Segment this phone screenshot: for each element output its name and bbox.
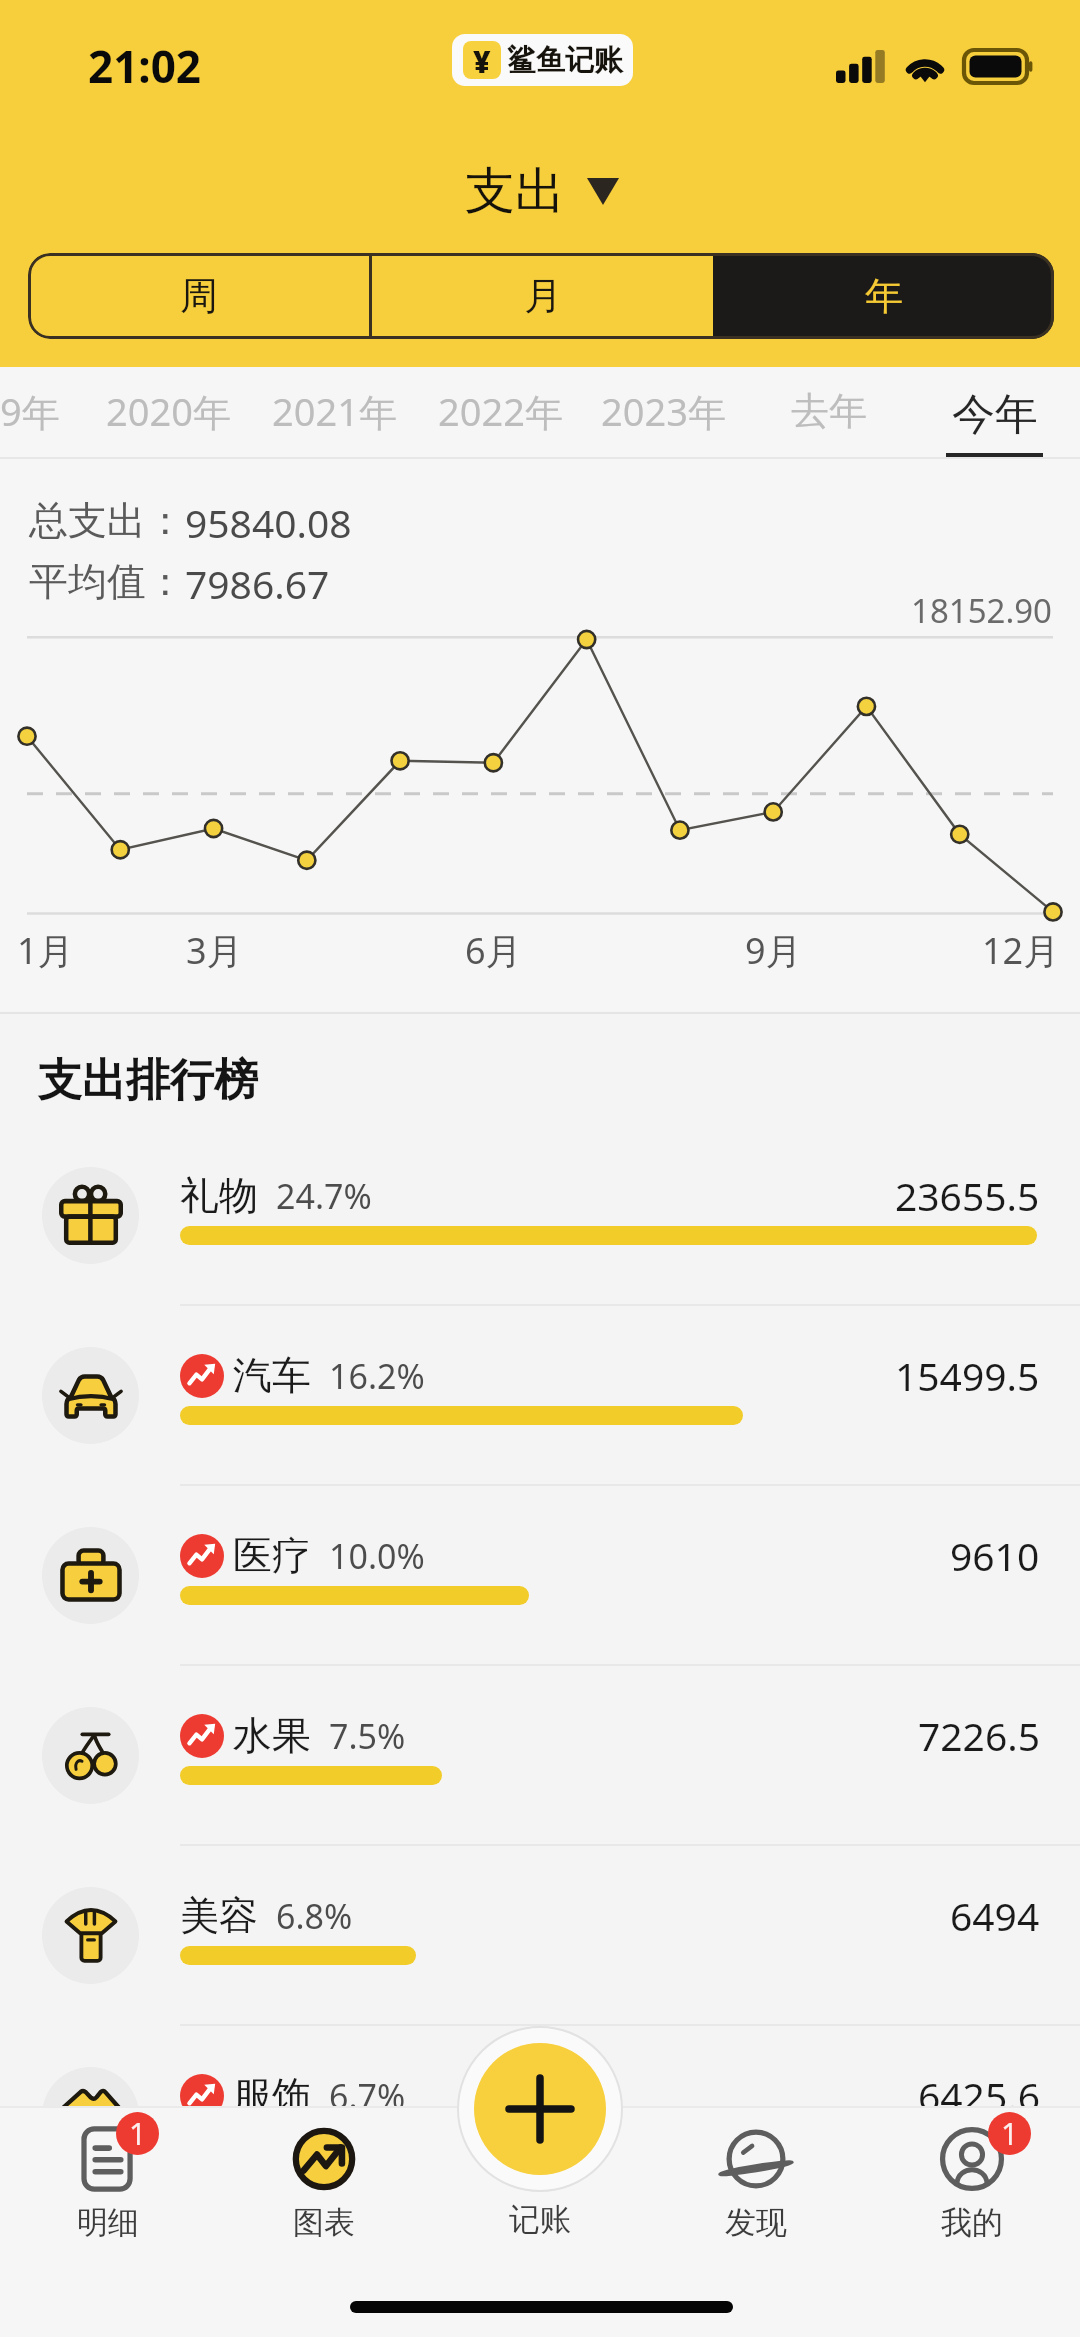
- staticText: 23655.5: [895, 1169, 1040, 1222]
- staticText: 周: [180, 272, 218, 320]
- staticText: 医疗: [233, 1531, 311, 1580]
- staticText: ¥: [473, 41, 491, 79]
- staticText: 2022年: [438, 385, 563, 437]
- staticText: 21:02: [88, 36, 202, 96]
- staticText: 我的: [941, 2203, 1003, 2242]
- staticText: 2020年: [106, 385, 231, 437]
- staticText: 6.8%: [276, 1893, 353, 1939]
- button[interactable]: 美容: [0, 1846, 1080, 2026]
- staticText: 支出: [465, 160, 565, 223]
- staticText: 9月: [745, 926, 802, 975]
- staticText: 今年: [952, 388, 1038, 442]
- staticText: 美容: [180, 1891, 258, 1940]
- staticText: 9年: [0, 385, 60, 437]
- button[interactable]: 2023年: [601, 368, 726, 453]
- button[interactable]: ¥: [452, 34, 633, 86]
- staticText: 2021年: [272, 385, 397, 437]
- staticText: 平均值：: [29, 557, 185, 606]
- staticText: 18152.90: [911, 588, 1052, 633]
- button[interactable]: 9年: [0, 368, 60, 453]
- staticText: 月: [524, 272, 562, 320]
- button[interactable]: 2020年: [106, 368, 231, 453]
- staticText: 6494: [950, 1889, 1040, 1942]
- staticText: 6.7%: [329, 2073, 406, 2119]
- button[interactable]: 2021年: [272, 368, 397, 453]
- button[interactable]: 我的: [892, 2127, 1052, 2257]
- staticText: 16.2%: [329, 1353, 425, 1399]
- staticText: 12月: [982, 926, 1060, 975]
- staticText: 7986.67: [185, 557, 330, 610]
- staticText: 2023年: [601, 385, 726, 437]
- staticText: 发现: [725, 2203, 787, 2242]
- staticText: 10.0%: [329, 1533, 425, 1579]
- staticText: 1: [129, 2113, 147, 2154]
- button[interactable]: 去年: [791, 368, 867, 453]
- button[interactable]: 周: [28, 253, 369, 339]
- staticText: 1月: [17, 926, 74, 975]
- staticText: 支出排行榜: [38, 1053, 258, 1108]
- staticText: 15499.5: [895, 1349, 1040, 1402]
- staticText: 7.5%: [329, 1713, 406, 1759]
- staticText: 总支出：: [29, 496, 185, 545]
- button[interactable]: 月: [372, 253, 713, 339]
- button[interactable]: 医疗: [0, 1486, 1080, 1666]
- button[interactable]: 记账: [460, 2200, 620, 2250]
- staticText: 95840.08: [185, 496, 352, 549]
- button[interactable]: 明细: [28, 2127, 188, 2257]
- staticText: 鲨鱼记账: [507, 42, 623, 79]
- button[interactable]: 今年: [930, 368, 1058, 458]
- button[interactable]: 汽车: [0, 1306, 1080, 1486]
- staticText: 1: [1001, 2113, 1019, 2154]
- button[interactable]: 发现: [676, 2127, 836, 2257]
- staticText: 年: [865, 272, 903, 320]
- staticText: 3月: [186, 926, 243, 975]
- staticText: 明细: [77, 2203, 139, 2242]
- staticText: 9610: [950, 1529, 1040, 1582]
- button[interactable]: 图表: [244, 2127, 404, 2257]
- staticText: 去年: [791, 387, 867, 435]
- button[interactable]: 礼物: [0, 1126, 1080, 1306]
- button[interactable]: 支出: [465, 160, 619, 223]
- staticText: 6月: [465, 926, 522, 975]
- staticText: 礼物: [180, 1171, 258, 1220]
- staticText: 记账: [509, 2200, 571, 2239]
- button[interactable]: 记账 Add record: [474, 2043, 606, 2175]
- button[interactable]: 2022年: [438, 368, 563, 453]
- button[interactable]: 服饰: [0, 2026, 1080, 2206]
- button[interactable]: 年: [713, 253, 1054, 339]
- staticText: 水果: [233, 1711, 311, 1760]
- staticText: 24.7%: [276, 1173, 372, 1219]
- staticText: 7226.5: [918, 1709, 1040, 1762]
- staticText: 图表: [293, 2203, 355, 2242]
- staticText: 6425.6: [918, 2069, 1040, 2122]
- button[interactable]: 水果: [0, 1666, 1080, 1846]
- staticText: 汽车: [233, 1351, 311, 1400]
- staticText: 服饰: [233, 2071, 311, 2120]
